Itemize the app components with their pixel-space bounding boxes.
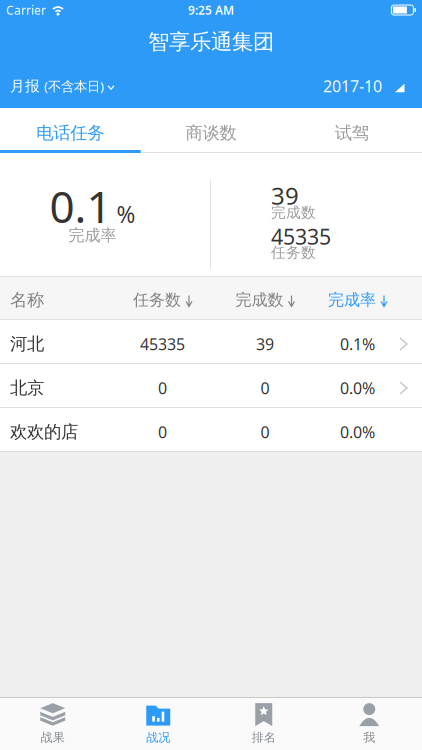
- button[interactable]: 欢欢的店: [0, 408, 422, 452]
- button[interactable]: 完成数: [215, 290, 315, 310]
- staticText: 39: [256, 333, 274, 355]
- staticText: 0: [260, 421, 269, 443]
- button[interactable]: 排名: [211, 698, 316, 750]
- button[interactable]: 河北: [0, 320, 422, 364]
- staticText: 完成数: [271, 203, 316, 221]
- staticText: 2017-10: [323, 75, 382, 97]
- button[interactable]: 电话任务: [0, 108, 141, 153]
- staticText: Carrier: [6, 2, 46, 18]
- button[interactable]: 2017-10: [323, 75, 404, 97]
- staticText: 0.0%: [340, 421, 375, 443]
- button[interactable]: 北京: [0, 364, 422, 408]
- button[interactable]: 完成率: [315, 290, 400, 310]
- staticText: 45335: [271, 222, 331, 251]
- staticText: 月报: [10, 77, 40, 95]
- staticText: 9:25 AM: [188, 2, 234, 18]
- staticText: 0.1%: [340, 333, 375, 355]
- staticText: 任务数: [133, 290, 181, 310]
- staticText: 39: [271, 180, 299, 211]
- button[interactable]: 月报: [10, 77, 114, 95]
- staticText: 名称: [10, 289, 44, 311]
- staticText: 完成率: [68, 226, 116, 245]
- staticText: 电话任务: [36, 122, 104, 144]
- staticText: 0.1: [49, 177, 111, 235]
- staticText: 试驾: [335, 122, 369, 144]
- staticText: 商谈数: [185, 122, 236, 144]
- staticText: 河北: [10, 333, 44, 355]
- staticText: 完成率: [328, 290, 376, 310]
- staticText: %: [116, 199, 135, 229]
- staticText: 战果: [41, 730, 65, 745]
- staticText: 0.0%: [340, 377, 375, 399]
- button[interactable]: 战况: [105, 698, 211, 750]
- staticText: 战况: [146, 730, 170, 745]
- staticText: 任务数: [271, 243, 316, 261]
- staticText: 排名: [252, 730, 276, 745]
- staticText: 45335: [140, 333, 185, 355]
- staticText: 欢欢的店: [10, 421, 78, 443]
- staticText: 完成数: [235, 290, 283, 310]
- staticText: (不含本日): [44, 77, 104, 95]
- button[interactable]: 试驾: [281, 108, 422, 153]
- button[interactable]: 我: [316, 698, 422, 750]
- button[interactable]: 战果: [0, 698, 105, 750]
- staticText: 0: [158, 421, 167, 443]
- staticText: 0: [260, 377, 269, 399]
- staticText: 0: [158, 377, 167, 399]
- button[interactable]: 任务数: [110, 290, 215, 310]
- staticText: 我: [363, 730, 375, 745]
- button[interactable]: 商谈数: [141, 108, 281, 153]
- staticText: 智享乐通集团: [148, 29, 274, 55]
- staticText: 北京: [10, 377, 44, 399]
